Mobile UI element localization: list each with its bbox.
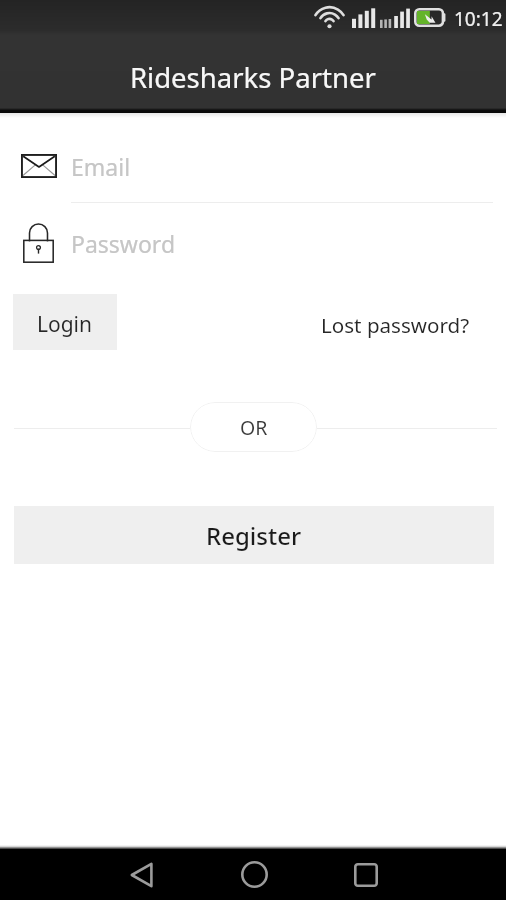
button[interactable]: Home <box>217 849 291 900</box>
staticText: 10:12 <box>454 6 503 32</box>
button[interactable]: Password <box>0 213 506 279</box>
staticText: Lost password? <box>321 311 470 339</box>
button[interactable]: Back <box>104 849 178 900</box>
button[interactable]: Lost password? <box>311 303 480 347</box>
staticText: Login <box>37 310 93 339</box>
staticText: OR <box>240 414 268 441</box>
staticText: Email <box>71 151 131 182</box>
staticText: Password <box>71 228 176 259</box>
button[interactable]: Recent apps <box>329 849 403 900</box>
button[interactable]: Register <box>14 506 494 564</box>
button[interactable]: Login <box>13 294 117 350</box>
button[interactable]: Email <box>0 137 506 203</box>
staticText: Ridesharks Partner <box>130 59 376 96</box>
staticText: Register <box>206 519 302 552</box>
